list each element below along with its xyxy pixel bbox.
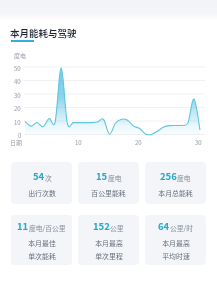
staticText: 出行次数	[28, 188, 56, 198]
staticText: 10	[75, 138, 82, 147]
staticText: 次	[45, 173, 52, 183]
staticText: 15	[96, 169, 108, 183]
staticText: 单次里程	[95, 251, 123, 261]
staticText: 152	[93, 219, 110, 233]
staticText: 度电	[14, 51, 27, 60]
button[interactable]: 54	[11, 162, 72, 204]
staticText: 公里	[110, 223, 124, 233]
staticText: 百公里能耗	[91, 188, 126, 198]
staticText: 30	[14, 91, 21, 100]
staticText: 度电/百公里	[29, 223, 66, 233]
staticText: 50	[14, 64, 21, 73]
staticText: 256	[160, 169, 177, 183]
staticText: 64	[158, 219, 170, 233]
button[interactable]: 11	[11, 215, 72, 265]
staticText: 30	[195, 138, 202, 147]
staticText: 20	[135, 138, 142, 147]
staticText: 20	[14, 104, 21, 113]
staticText: 单次能耗	[28, 251, 56, 261]
staticText: 10	[14, 118, 21, 127]
staticText: 度电	[177, 173, 191, 183]
staticText: 11	[17, 219, 29, 233]
staticText: 公里/时	[170, 223, 194, 233]
staticText: 本月最高	[162, 238, 190, 248]
staticText: 本月总能耗	[158, 188, 193, 198]
button[interactable]: 15	[78, 162, 139, 204]
staticText: 日期	[10, 138, 23, 147]
staticText: 本月最佳	[28, 238, 56, 248]
staticText: 度电	[108, 173, 122, 183]
staticText: 本月最高	[95, 238, 123, 248]
staticText: 54	[33, 169, 45, 183]
staticText: 0	[18, 131, 22, 140]
staticText: 平均时速	[162, 251, 190, 261]
button[interactable]: 256	[145, 162, 206, 204]
staticText: 本月能耗与驾驶	[10, 26, 77, 40]
button[interactable]: 152	[78, 215, 139, 265]
staticText: 40	[14, 77, 21, 86]
button[interactable]: 64	[145, 215, 206, 265]
